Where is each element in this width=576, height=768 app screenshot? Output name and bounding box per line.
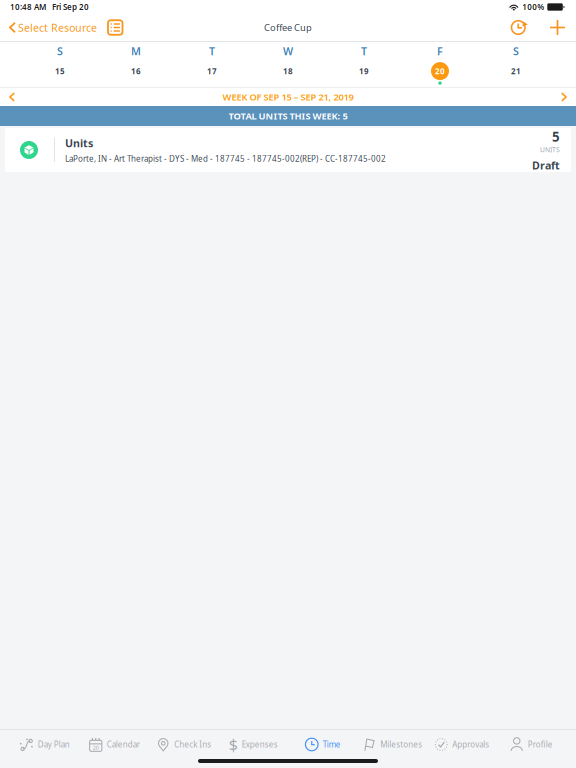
staticText: Check Ins <box>174 739 211 750</box>
button[interactable]: Recent time entries <box>504 14 532 40</box>
staticText: W <box>283 44 293 58</box>
staticText: $ <box>229 734 238 755</box>
staticText: Coffee Cup <box>264 21 312 34</box>
staticText: Profile <box>528 739 553 750</box>
staticText: Day Plan <box>38 739 70 750</box>
staticText: 5 <box>552 128 560 145</box>
staticText: M <box>131 44 141 58</box>
staticText: Milestones <box>380 739 422 750</box>
staticText: 20 <box>435 66 445 76</box>
staticText: 20 <box>93 744 99 751</box>
button[interactable]: Add <box>544 14 573 40</box>
button[interactable]: S <box>478 44 554 85</box>
staticText: UNITS <box>540 145 560 154</box>
staticText: Units <box>65 136 93 150</box>
button[interactable]: Previous week <box>2 88 22 106</box>
staticText: S <box>57 44 63 58</box>
staticText: 18 <box>283 66 293 76</box>
staticText: WEEK OF SEP 15 – SEP 21, 2019 <box>222 91 353 103</box>
staticText: Select Resource <box>18 20 97 35</box>
staticText: Calendar <box>107 739 140 750</box>
staticText: T <box>209 44 215 58</box>
button[interactable]: T <box>174 44 250 85</box>
staticText: Expenses <box>242 739 278 750</box>
staticText: 21 <box>511 66 521 76</box>
button[interactable]: Profile <box>496 730 566 759</box>
staticText: Approvals <box>452 739 489 750</box>
staticText: 19 <box>359 66 369 76</box>
button[interactable]: Next week <box>554 88 574 106</box>
staticText: Fri Sep 20 <box>52 2 89 12</box>
button[interactable]: M <box>98 44 174 85</box>
button[interactable]: Milestones <box>357 730 427 759</box>
button[interactable]: S <box>22 44 98 85</box>
button[interactable]: 20 <box>79 730 149 759</box>
staticText: Time <box>323 739 341 750</box>
staticText: LaPorte, IN - Art Therapist - DYS - Med … <box>65 153 386 164</box>
button[interactable]: $ <box>218 730 288 759</box>
staticText: F <box>437 44 443 58</box>
staticText: T <box>361 44 367 58</box>
button[interactable]: Check Ins <box>149 730 218 759</box>
button[interactable]: Time <box>288 730 357 759</box>
staticText: TOTAL UNITS THIS WEEK: 5 <box>228 110 347 122</box>
button[interactable]: F <box>402 44 478 85</box>
button[interactable]: W <box>250 44 326 85</box>
button[interactable]: Resource list <box>103 14 127 40</box>
staticText: 15 <box>55 66 65 76</box>
staticText: 16 <box>131 66 141 76</box>
button[interactable]: Units <box>0 126 576 172</box>
staticText: 100% <box>522 2 544 12</box>
staticText: 10:48 AM <box>10 2 46 12</box>
button[interactable]: Day Plan <box>10 730 79 759</box>
staticText: S <box>513 44 519 58</box>
button[interactable]: Approvals <box>427 730 496 759</box>
button[interactable]: T <box>326 44 402 85</box>
staticText: Draft <box>532 158 560 172</box>
button[interactable]: Select Resource <box>3 14 103 40</box>
staticText: 17 <box>207 66 217 76</box>
